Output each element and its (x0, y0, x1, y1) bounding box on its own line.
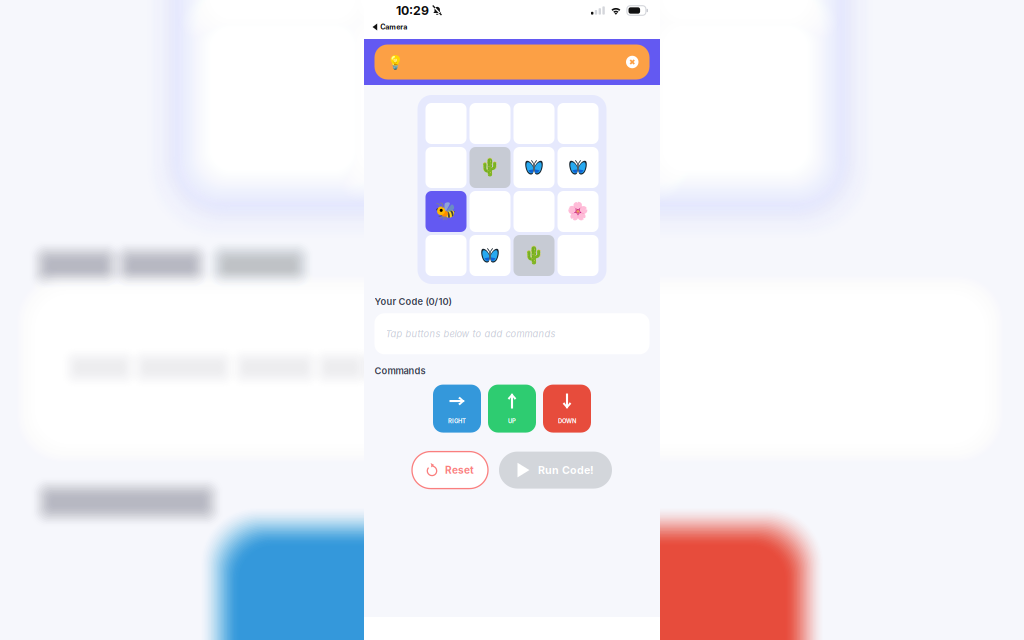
staticText: RIGHT (448, 417, 466, 425)
staticText: 10:29 (396, 3, 429, 18)
staticText: 🐝 (435, 201, 457, 222)
staticText: DOWN (558, 417, 576, 425)
staticText: 🌸 (567, 201, 589, 222)
staticText: Run Code! (538, 464, 594, 476)
button[interactable]: RIGHT (433, 385, 481, 433)
staticText: Your Code (0/10) (374, 296, 451, 307)
staticText: Reset (445, 464, 474, 476)
button[interactable]: Reset (412, 452, 488, 489)
staticText: Tap buttons below to add commands (385, 328, 555, 339)
staticText: 🌵 (479, 157, 501, 178)
button[interactable]: Hint (374, 44, 649, 79)
staticText: Commands (374, 365, 425, 377)
staticText: 💡 (386, 54, 403, 70)
staticText: 🌵 (523, 245, 545, 266)
button[interactable]: DOWN (543, 385, 591, 433)
button[interactable]: Run Code! (499, 452, 612, 489)
button[interactable]: UP (488, 385, 536, 433)
staticText: UP (508, 417, 516, 425)
staticText: Camera (380, 23, 407, 31)
